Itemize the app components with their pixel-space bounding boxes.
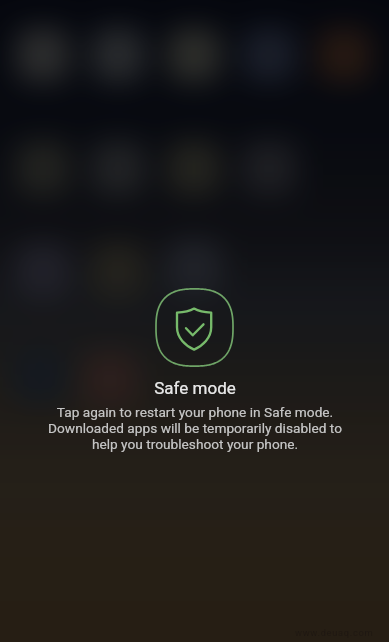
staticText: Tap again to restart your phone in Safe … xyxy=(39,404,351,452)
staticText: Safe mode xyxy=(154,378,236,398)
button[interactable]: Safe mode xyxy=(152,285,237,370)
